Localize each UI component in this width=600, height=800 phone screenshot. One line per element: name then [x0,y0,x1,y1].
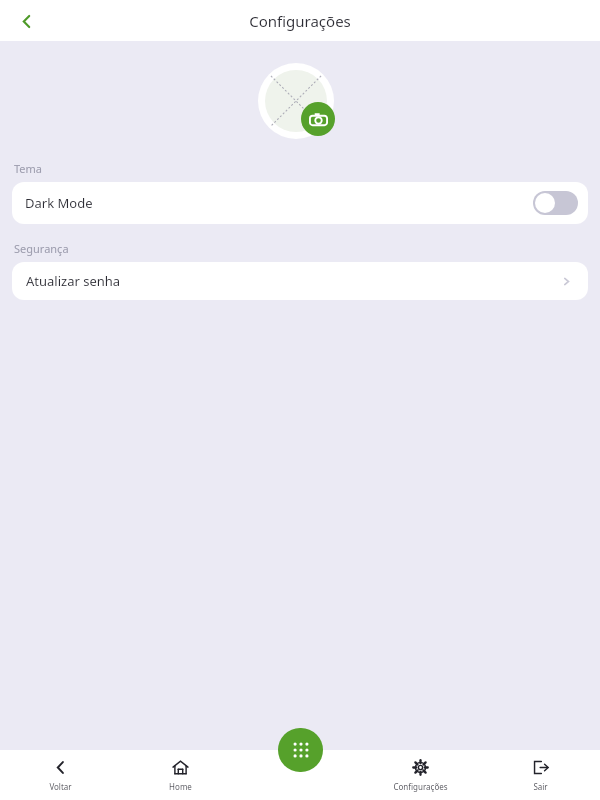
button[interactable]: Voltar [0,750,120,800]
staticText: Segurança [14,241,69,256]
staticText: Voltar [49,781,72,792]
button[interactable]: Dark Mode switch, off [533,191,578,215]
staticText: Sair [533,781,548,792]
button[interactable]: Atualizar senha [12,262,588,300]
staticText: Tema [14,161,43,176]
button[interactable]: Home [120,750,240,800]
button[interactable]: Apps menu [278,728,323,772]
staticText: Atualizar senha [26,272,121,290]
button[interactable]: Back [10,5,42,37]
button[interactable]: Dark Mode [12,182,588,224]
staticText: Configurações [249,11,351,31]
staticText: Dark Mode [25,194,93,212]
staticText: Configurações [393,781,448,792]
button[interactable]: Change profile photo [301,102,335,136]
button[interactable]: Configurações [360,750,480,800]
button[interactable]: Sair [480,750,600,800]
staticText: Home [169,781,192,792]
